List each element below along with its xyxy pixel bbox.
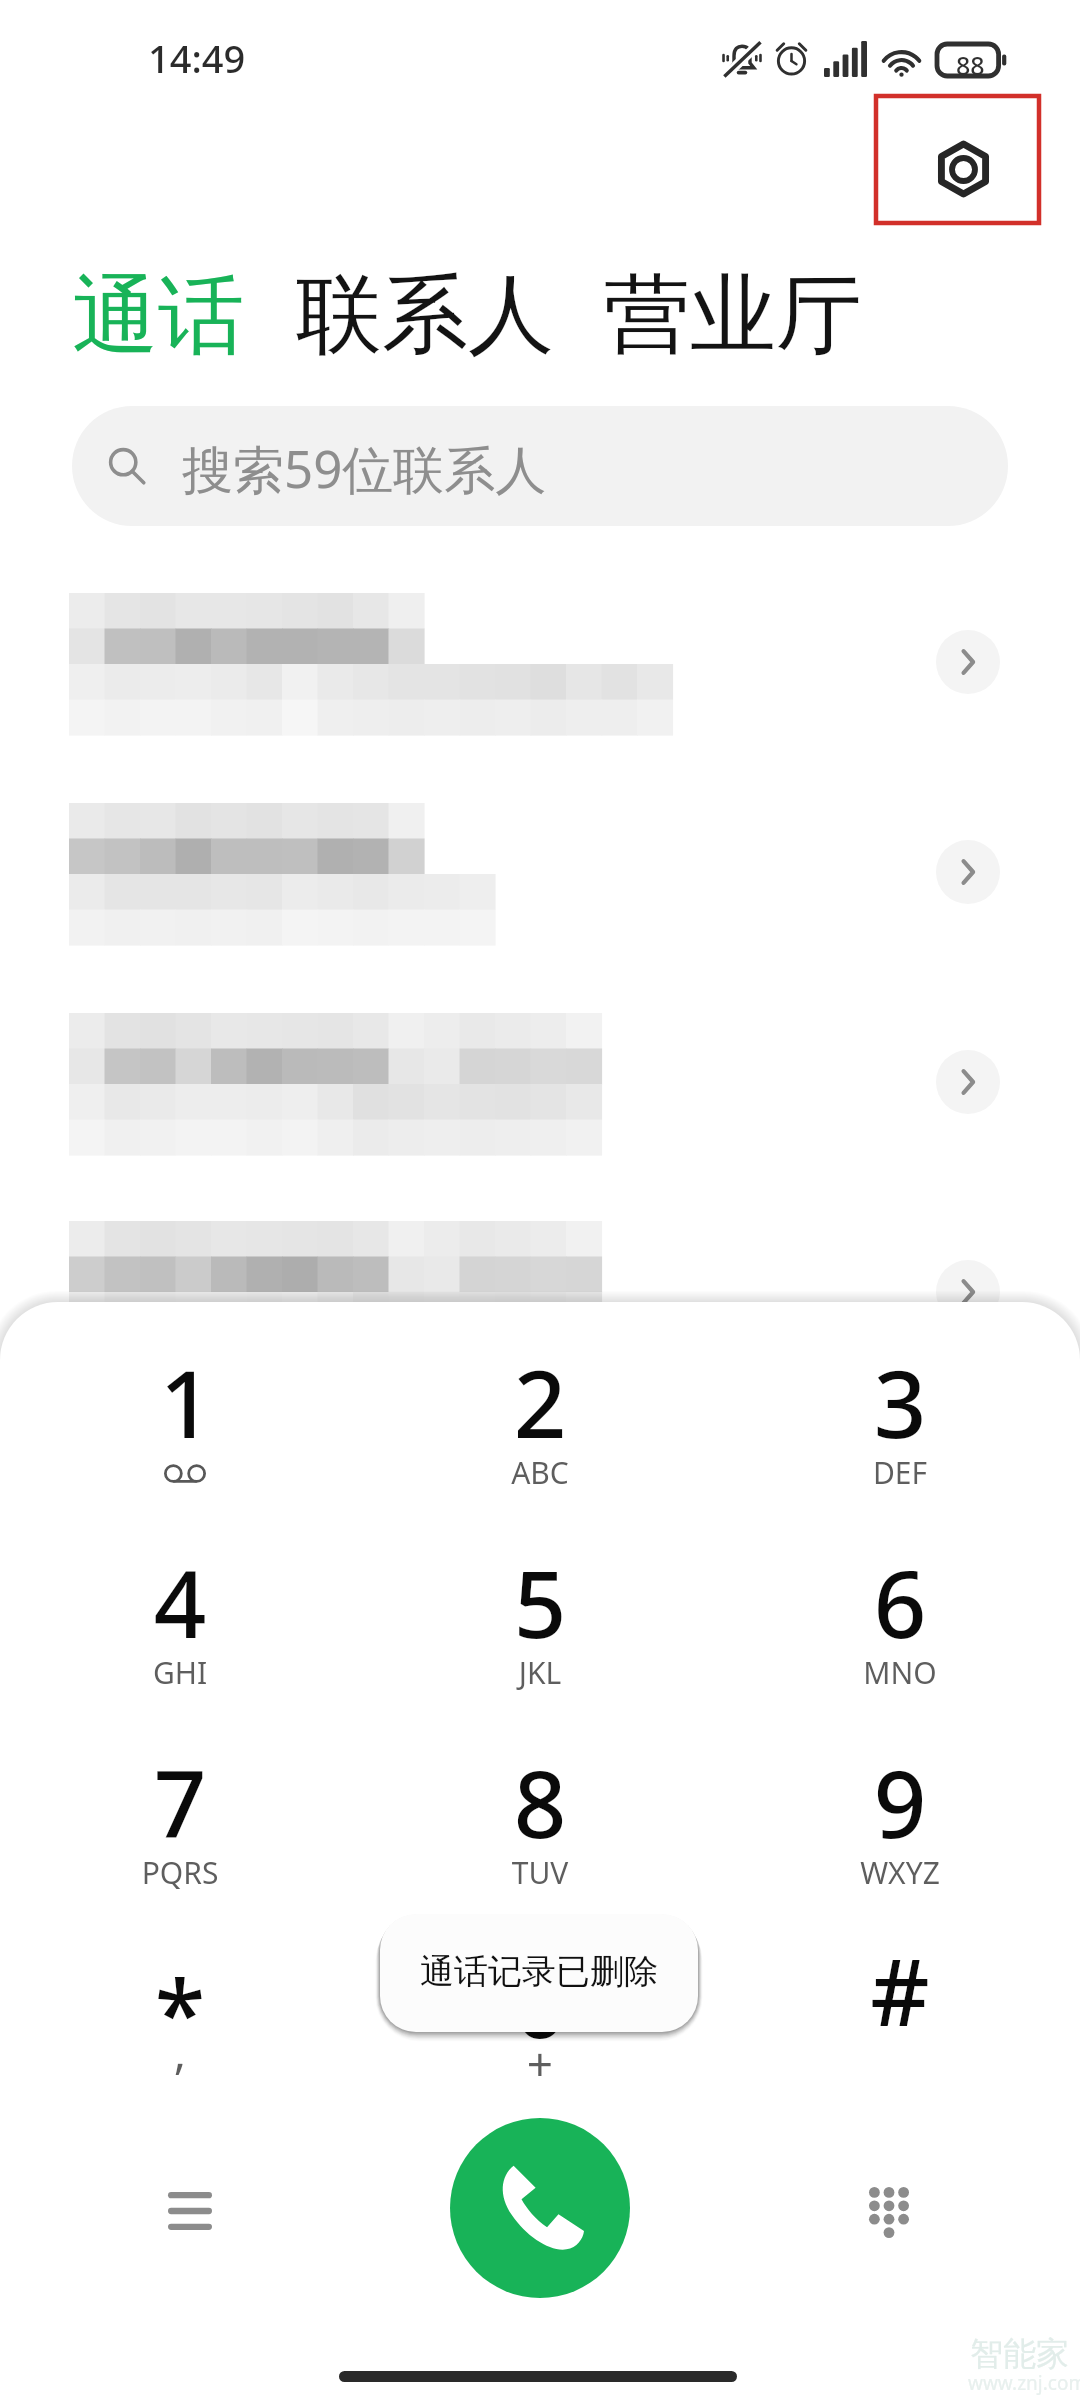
staticText: www.znj.com — [968, 2370, 1080, 2396]
staticText: 7 — [60, 1740, 300, 1865]
staticText: # — [780, 1928, 1020, 2053]
button[interactable]: Call log entry — [0, 993, 1080, 1203]
staticText: 智能家 — [970, 2333, 1069, 2375]
staticText: 3 — [780, 1340, 1020, 1465]
staticText: 9 — [780, 1740, 1020, 1865]
button[interactable]: * — [60, 1910, 300, 2100]
staticText: 1 — [66, 1340, 306, 1465]
staticText: MNO — [780, 1652, 1020, 1693]
button[interactable]: 营业厅 — [604, 261, 862, 369]
button[interactable]: 0 — [420, 1910, 660, 2100]
staticText: , — [60, 2020, 300, 2083]
staticText: 4 — [60, 1540, 300, 1665]
staticText: ABC — [420, 1452, 660, 1493]
button[interactable]: 6 — [780, 1510, 1020, 1700]
button[interactable]: 5 — [420, 1510, 660, 1700]
staticText: GHI — [60, 1652, 300, 1693]
button[interactable]: Call log menu — [136, 2157, 244, 2265]
button[interactable]: Settings — [874, 94, 1041, 225]
staticText: 联系人 — [296, 261, 554, 369]
button[interactable]: 3 — [780, 1310, 1020, 1500]
button[interactable]: 联系人 — [296, 261, 554, 369]
button[interactable]: 4 — [60, 1510, 300, 1700]
staticText: 6 — [780, 1540, 1020, 1665]
staticText: WXYZ — [780, 1852, 1020, 1893]
button[interactable]: 搜索59位联系人 — [72, 406, 1008, 526]
staticText: 搜索59位联系人 — [182, 433, 547, 503]
staticText: PQRS — [60, 1852, 300, 1893]
staticText: 通话 — [72, 262, 244, 370]
button[interactable]: 1 — [60, 1310, 300, 1500]
button[interactable]: 7 — [60, 1710, 300, 1900]
staticText: 2 — [420, 1340, 660, 1465]
staticText: JKL — [420, 1652, 660, 1693]
button[interactable]: Call — [450, 2118, 630, 2298]
button[interactable]: Call log entry — [0, 580, 1080, 790]
staticText: 通话记录已删除 — [420, 1950, 658, 1993]
staticText: 88 — [956, 48, 985, 80]
staticText: TUV — [420, 1852, 660, 1893]
staticText: + — [420, 2032, 660, 2095]
staticText: 5 — [420, 1540, 660, 1665]
staticText: 14:49 — [148, 32, 246, 84]
button[interactable]: 9 — [780, 1710, 1020, 1900]
staticText: 营业厅 — [604, 261, 862, 369]
button[interactable]: 8 — [420, 1710, 660, 1900]
button[interactable]: # — [780, 1910, 1020, 2100]
staticText: DEF — [780, 1452, 1020, 1493]
staticText: 0 — [420, 1940, 660, 2065]
button[interactable]: 2 — [420, 1310, 660, 1500]
button[interactable]: Call log entry — [0, 1201, 1080, 1411]
staticText: 8 — [420, 1740, 660, 1865]
button[interactable]: Call log entry — [0, 780, 1080, 990]
button[interactable]: Keypad — [835, 2158, 943, 2266]
button[interactable]: 通话 — [72, 262, 244, 370]
staticText: * — [60, 1950, 300, 2075]
